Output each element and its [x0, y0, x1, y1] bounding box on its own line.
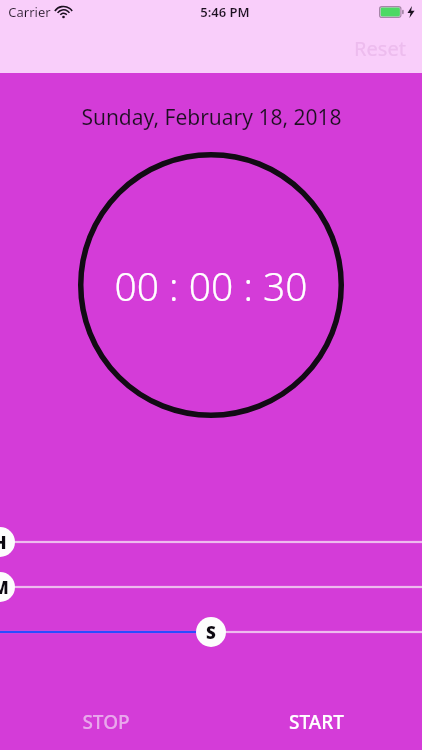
button[interactable]: STOP	[0, 700, 211, 744]
button[interactable]: Reset	[338, 25, 422, 72]
staticText: STOP	[82, 709, 130, 735]
button[interactable]: H slider	[0, 524, 422, 560]
staticText: Sunday, February 18, 2018	[81, 103, 342, 132]
staticText: 5:46 PM	[200, 3, 250, 21]
button[interactable]: M slider	[0, 569, 422, 605]
staticText: M	[0, 576, 9, 599]
button[interactable]: S slider	[0, 614, 422, 650]
staticText: 00 : 00 : 30	[114, 259, 308, 312]
staticText: H	[0, 531, 7, 554]
staticText: S	[206, 621, 216, 644]
staticText: Carrier	[8, 3, 51, 21]
staticText: START	[289, 709, 344, 735]
button[interactable]: START	[211, 700, 422, 744]
staticText: Reset	[354, 35, 406, 62]
